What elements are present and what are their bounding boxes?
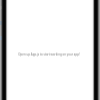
staticText: Open up App.js to start working on your …	[18, 52, 80, 56]
staticText: Open up App.js to start working on your …	[18, 52, 80, 56]
